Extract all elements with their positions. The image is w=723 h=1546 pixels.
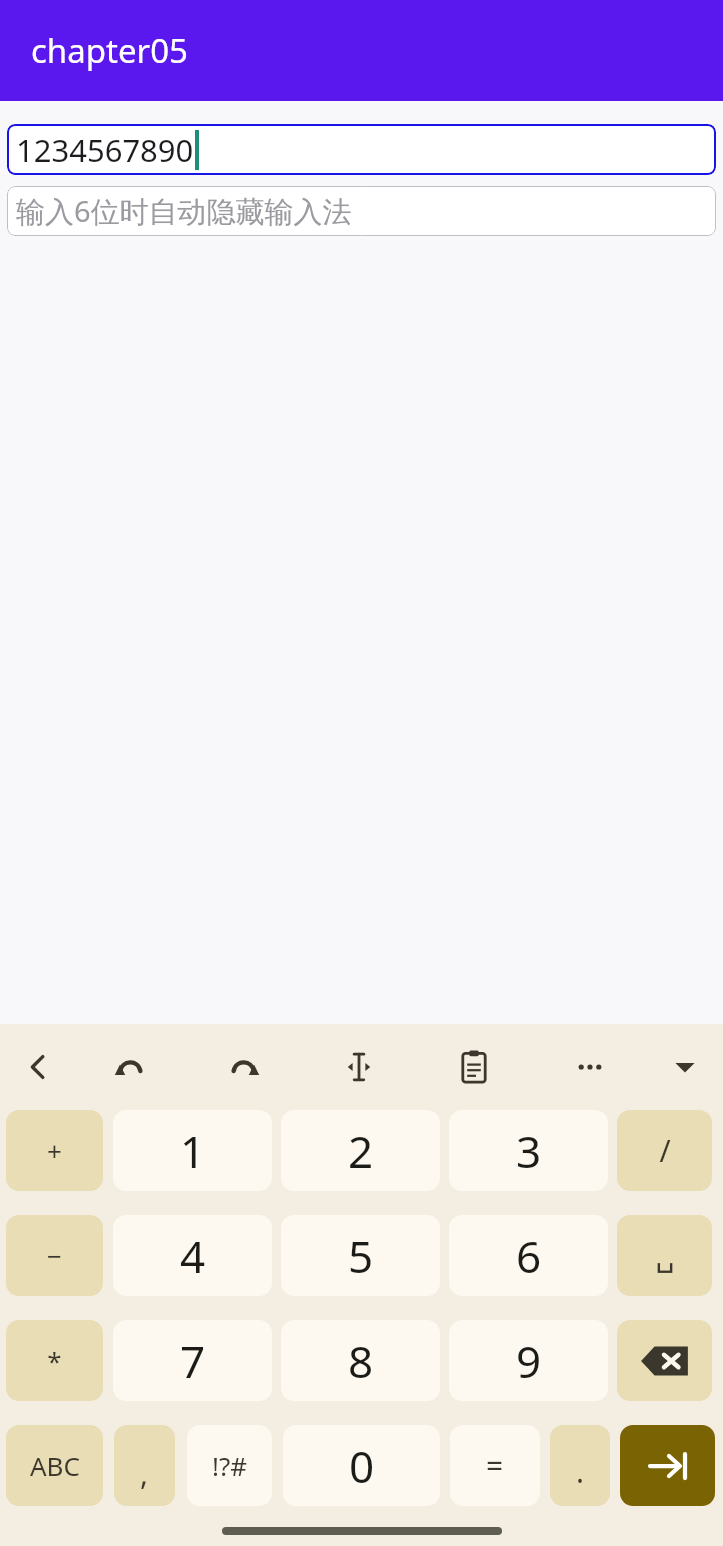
staticText: 4 — [180, 1226, 206, 1286]
button[interactable]: Cursor move — [337, 1045, 381, 1089]
button[interactable]: 7 — [113, 1320, 272, 1401]
staticText: * — [47, 1343, 62, 1378]
button[interactable]: Back — [16, 1045, 60, 1089]
button[interactable]: * — [6, 1320, 103, 1401]
button[interactable]: Undo — [108, 1045, 152, 1089]
button[interactable]: Enter — [620, 1425, 715, 1506]
staticText: / — [659, 1130, 671, 1171]
button[interactable]: 输入6位时自动隐藏输入法 — [7, 186, 716, 236]
button[interactable]: + — [6, 1110, 103, 1191]
staticText: = — [486, 1445, 504, 1486]
button[interactable]: Redo — [222, 1045, 266, 1089]
button[interactable]: More options — [568, 1045, 612, 1089]
staticText: − — [47, 1238, 62, 1273]
button[interactable]: 9 — [449, 1320, 608, 1401]
button[interactable]: , — [114, 1425, 175, 1506]
button[interactable]: 3 — [449, 1110, 608, 1191]
button[interactable]: 1234567890 — [7, 124, 716, 175]
staticText: + — [47, 1133, 62, 1168]
button[interactable]: 4 — [113, 1215, 272, 1296]
staticText: 1234567890 — [16, 129, 194, 171]
staticText: 7 — [180, 1331, 206, 1391]
button[interactable]: Hide keyboard — [663, 1045, 707, 1089]
button[interactable]: Backspace — [617, 1320, 712, 1401]
button[interactable]: ␣ — [617, 1215, 712, 1296]
button[interactable]: 6 — [449, 1215, 608, 1296]
button[interactable]: Clipboard — [452, 1045, 496, 1089]
staticText: 8 — [348, 1331, 374, 1391]
button[interactable]: 0 — [283, 1425, 440, 1506]
staticText: 6 — [516, 1226, 542, 1286]
button[interactable]: ABC — [6, 1425, 103, 1506]
staticText: 0 — [349, 1436, 375, 1496]
staticText: 输入6位时自动隐藏输入法 — [16, 191, 352, 231]
staticText: 3 — [516, 1121, 542, 1181]
button[interactable]: / — [617, 1110, 712, 1191]
staticText: !?# — [212, 1448, 248, 1483]
staticText: 2 — [348, 1121, 374, 1181]
staticText: 5 — [348, 1226, 374, 1286]
staticText: 9 — [516, 1331, 542, 1391]
staticText: . — [576, 1451, 585, 1492]
staticText: 1 — [180, 1121, 206, 1181]
button[interactable]: 2 — [281, 1110, 440, 1191]
staticText: , — [140, 1453, 149, 1494]
button[interactable]: 5 — [281, 1215, 440, 1296]
staticText: ␣ — [655, 1238, 675, 1273]
button[interactable]: !?# — [187, 1425, 272, 1506]
button[interactable]: 1 — [113, 1110, 272, 1191]
button[interactable]: − — [6, 1215, 103, 1296]
button[interactable]: = — [450, 1425, 540, 1506]
staticText: ABC — [30, 1448, 80, 1483]
staticText: chapter05 — [31, 28, 188, 73]
button[interactable]: . — [550, 1425, 610, 1506]
button[interactable]: 8 — [281, 1320, 440, 1401]
